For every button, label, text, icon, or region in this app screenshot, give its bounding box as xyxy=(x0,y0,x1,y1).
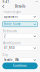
staticText: Details xyxy=(15,5,25,8)
button[interactable]: Back xyxy=(1,4,5,9)
staticText: ▬▬ xyxy=(35,1,37,3)
staticText: City xyxy=(3,53,8,57)
staticText: 2 xyxy=(4,34,6,38)
staticText: $1,850 xyxy=(4,46,15,50)
staticText: 9:41 xyxy=(3,0,10,4)
staticText: Monthly rent xyxy=(3,41,21,45)
button[interactable]: Continue xyxy=(2,62,38,69)
staticText: Bedrooms xyxy=(3,29,17,33)
staticText: Seattle, WA xyxy=(4,58,19,62)
staticText: Entire home xyxy=(4,22,21,26)
staticText: Property type xyxy=(3,10,22,14)
staticText: Continue xyxy=(13,64,27,68)
staticText: Apartment xyxy=(4,15,18,18)
